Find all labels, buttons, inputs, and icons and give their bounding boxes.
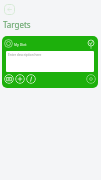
staticText: Enter description here (8, 53, 42, 57)
button[interactable]: Verified (86, 39, 96, 49)
button[interactable]: Add (15, 74, 25, 84)
button[interactable]: Enter description here (6, 51, 94, 72)
button[interactable]: Info (26, 74, 36, 84)
staticText: Targets (3, 19, 31, 30)
staticText: My Diet (14, 42, 27, 47)
button[interactable]: Send (86, 74, 96, 84)
button[interactable]: Camera (4, 74, 14, 84)
button[interactable]: Back (4, 4, 15, 15)
